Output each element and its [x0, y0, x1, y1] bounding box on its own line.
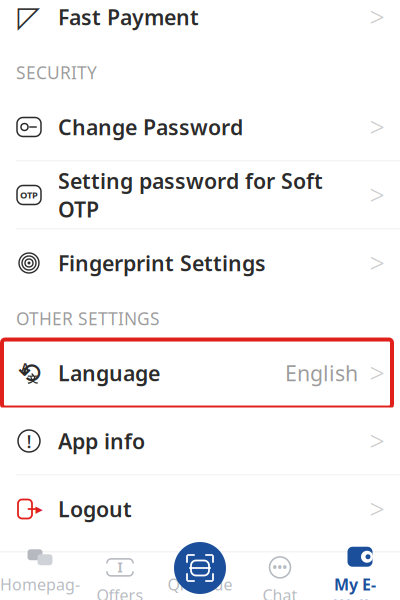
staticText: Logout	[58, 495, 132, 523]
staticText: Setting password for Soft OTP	[58, 167, 323, 223]
staticText: OTP	[20, 189, 38, 201]
button[interactable]: QR Code Scan	[160, 552, 240, 600]
staticText: Homepage	[0, 574, 80, 600]
staticText: English	[285, 359, 358, 387]
button[interactable]: Fingerprint Settings	[0, 229, 400, 297]
staticText: •••	[272, 559, 287, 575]
staticText: QR Code Scan	[167, 574, 232, 600]
button[interactable]: I	[80, 552, 160, 600]
button[interactable]: My E-Wallet	[320, 552, 400, 600]
staticText: >	[369, 245, 384, 281]
staticText: ▸	[35, 501, 42, 517]
staticText: OTHER SETTINGS	[16, 307, 160, 330]
staticText: Chat	[262, 584, 297, 600]
button[interactable]: Change Password	[0, 93, 400, 161]
staticText: >	[369, 355, 384, 391]
staticText: Offers	[96, 584, 143, 600]
staticText: Change Password	[58, 113, 243, 141]
staticText: A	[21, 360, 28, 374]
button[interactable]: Homepage	[0, 552, 80, 600]
staticText: I	[117, 558, 122, 576]
staticText: >	[369, 0, 384, 35]
button[interactable]: ◸	[0, 0, 400, 51]
staticText: >	[369, 109, 384, 145]
button[interactable]: QR Code Scan	[174, 542, 226, 594]
staticText: 文	[27, 372, 38, 385]
staticText: >	[369, 491, 384, 527]
button[interactable]: ▸	[0, 475, 400, 543]
staticText: ◸	[17, 0, 40, 34]
staticText: >	[369, 177, 384, 213]
staticText: SECURITY	[16, 61, 97, 84]
button[interactable]: •••	[240, 552, 320, 600]
button[interactable]: !	[0, 407, 400, 475]
button[interactable]: ⟲	[0, 339, 400, 407]
button[interactable]: OTP	[0, 161, 400, 229]
staticText: My E-Wallet	[334, 574, 386, 600]
staticText: Fast Payment	[58, 3, 199, 31]
staticText: Language	[58, 359, 160, 387]
staticText: >	[369, 423, 384, 459]
staticText: ⟲	[17, 357, 40, 389]
staticText: Fingerprint Settings	[58, 249, 266, 277]
staticText: !	[26, 429, 31, 453]
staticText: App info	[58, 427, 145, 455]
